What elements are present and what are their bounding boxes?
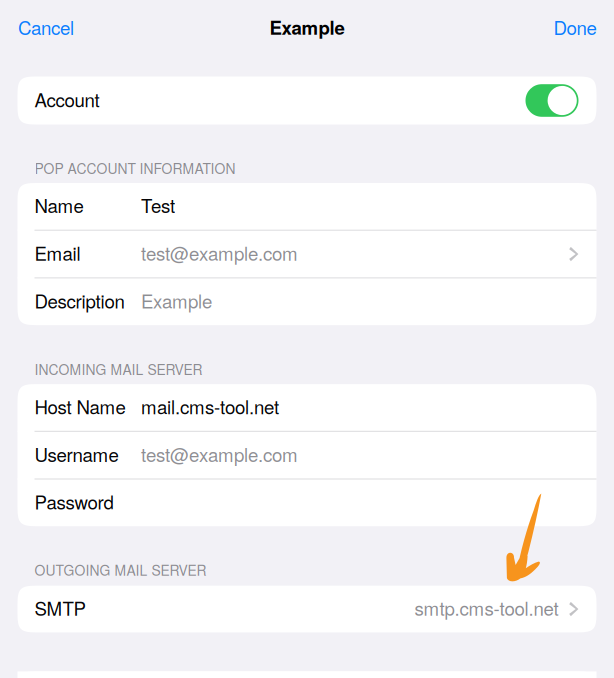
staticText: mail.cms-tool.net bbox=[141, 393, 279, 419]
staticText: Password bbox=[34, 488, 113, 515]
button[interactable]: Host Name bbox=[17, 384, 596, 431]
staticText: INCOMING MAIL SERVER bbox=[34, 359, 202, 379]
staticText: Cancel bbox=[18, 14, 74, 40]
staticText: Name bbox=[34, 192, 83, 218]
button[interactable]: Name bbox=[17, 183, 596, 230]
staticText: POP ACCOUNT INFORMATION bbox=[34, 158, 235, 178]
button[interactable]: Email bbox=[17, 231, 596, 277]
staticText: test@example.com bbox=[141, 440, 298, 467]
button[interactable]: SMTP bbox=[17, 586, 596, 632]
button[interactable]: Description bbox=[17, 278, 596, 325]
staticText: Username bbox=[34, 440, 118, 467]
button[interactable]: Cancel bbox=[18, 14, 74, 40]
button[interactable]: Password bbox=[17, 479, 596, 526]
staticText: OUTGOING MAIL SERVER bbox=[34, 560, 206, 580]
staticText: Host Name bbox=[34, 393, 125, 419]
staticText: Example bbox=[141, 287, 212, 314]
button[interactable]: Done bbox=[553, 14, 596, 40]
staticText: Email bbox=[34, 239, 80, 266]
button[interactable]: Username bbox=[17, 432, 596, 478]
staticText: Description bbox=[34, 287, 124, 314]
staticText: Example bbox=[269, 14, 344, 40]
staticText: Account bbox=[34, 86, 99, 112]
staticText: Done bbox=[553, 14, 596, 40]
staticText: smtp.cms-tool.net bbox=[414, 594, 558, 621]
staticText: Test bbox=[141, 192, 175, 218]
staticText: SMTP bbox=[34, 594, 85, 621]
staticText: test@example.com bbox=[141, 239, 298, 266]
